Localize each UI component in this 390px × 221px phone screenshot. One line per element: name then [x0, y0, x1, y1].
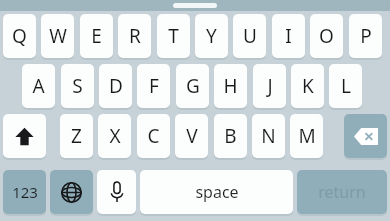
button[interactable]: N	[252, 114, 285, 158]
button[interactable]: O	[310, 14, 343, 58]
staticText: M	[298, 123, 316, 149]
staticText: K	[302, 73, 314, 99]
staticText: space	[195, 181, 239, 203]
staticText: V	[186, 123, 198, 149]
button[interactable]: W	[41, 14, 74, 58]
button[interactable]: X	[98, 114, 131, 158]
button[interactable]: Z	[60, 114, 93, 158]
button[interactable]: Drag handle	[173, 3, 217, 8]
staticText: L	[341, 73, 351, 99]
button[interactable]: B	[214, 114, 247, 158]
staticText: D	[109, 73, 123, 99]
staticText: C	[147, 123, 160, 149]
button[interactable]: H	[214, 64, 247, 108]
staticText: A	[32, 73, 45, 99]
button[interactable]: U	[233, 14, 266, 58]
button[interactable]: 123	[3, 170, 46, 214]
button[interactable]: Dictate	[97, 170, 136, 214]
staticText: H	[223, 73, 238, 99]
button[interactable]: S	[61, 64, 94, 108]
staticText: Z	[71, 123, 82, 149]
staticText: return	[318, 181, 366, 203]
staticText: S	[72, 73, 83, 99]
button[interactable]: L	[329, 64, 362, 108]
button[interactable]: T	[157, 14, 190, 58]
button[interactable]: D	[99, 64, 132, 108]
staticText: G	[186, 73, 200, 99]
button[interactable]: E	[80, 14, 113, 58]
button[interactable]: R	[118, 14, 151, 58]
staticText: B	[224, 123, 237, 149]
button[interactable]: Next keyboard	[50, 170, 93, 214]
button[interactable]: F	[137, 64, 170, 108]
staticText: I	[285, 23, 292, 49]
button[interactable]: Y	[195, 14, 228, 58]
staticText: W	[49, 23, 67, 49]
button[interactable]: V	[175, 114, 208, 158]
staticText: Q	[12, 23, 27, 49]
button[interactable]: J	[253, 64, 286, 108]
staticText: P	[360, 23, 372, 49]
button[interactable]: I	[272, 14, 305, 58]
button[interactable]: P	[349, 14, 382, 58]
staticText: O	[319, 23, 334, 49]
button[interactable]: Q	[3, 14, 36, 58]
staticText: R	[129, 23, 141, 49]
staticText: E	[91, 23, 102, 49]
button[interactable]: A	[22, 64, 55, 108]
button[interactable]: G	[176, 64, 209, 108]
staticText: 123	[12, 182, 38, 202]
staticText: Y	[206, 23, 217, 49]
button[interactable]: Backspace	[344, 114, 387, 158]
staticText: N	[261, 123, 276, 149]
button[interactable]: space	[140, 170, 293, 214]
staticText: F	[149, 73, 159, 99]
button[interactable]: K	[291, 64, 324, 108]
staticText: T	[168, 23, 179, 49]
button[interactable]: C	[137, 114, 170, 158]
staticText: X	[109, 123, 121, 149]
button[interactable]: Shift	[3, 114, 46, 158]
staticText: J	[267, 73, 273, 99]
button[interactable]: return	[297, 170, 387, 214]
staticText: U	[243, 23, 257, 49]
button[interactable]: M	[290, 114, 323, 158]
